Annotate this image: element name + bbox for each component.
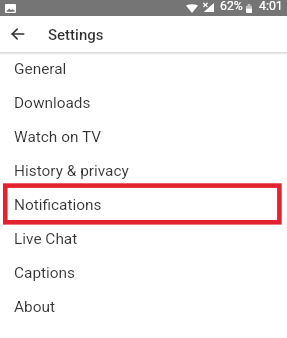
- button[interactable]: About: [0, 290, 287, 324]
- staticText: Watch on TV: [14, 128, 102, 146]
- button[interactable]: Watch on TV: [0, 120, 287, 154]
- staticText: 4:01: [259, 0, 283, 13]
- staticText: General: [14, 60, 67, 78]
- staticText: Live Chat: [14, 230, 78, 248]
- staticText: Captions: [14, 264, 76, 282]
- button[interactable]: Live Chat: [0, 222, 287, 256]
- staticText: History & privacy: [14, 162, 129, 180]
- button[interactable]: Downloads: [0, 86, 287, 120]
- staticText: About: [14, 298, 55, 316]
- button[interactable]: Notifications: [0, 188, 287, 222]
- staticText: Settings: [48, 26, 104, 44]
- button[interactable]: General: [0, 52, 287, 86]
- button[interactable]: History & privacy: [0, 154, 287, 188]
- staticText: 62%: [220, 0, 243, 13]
- button[interactable]: Back: [0, 17, 34, 51]
- staticText: Downloads: [14, 94, 91, 112]
- button[interactable]: Captions: [0, 256, 287, 290]
- staticText: Notifications: [14, 196, 102, 214]
